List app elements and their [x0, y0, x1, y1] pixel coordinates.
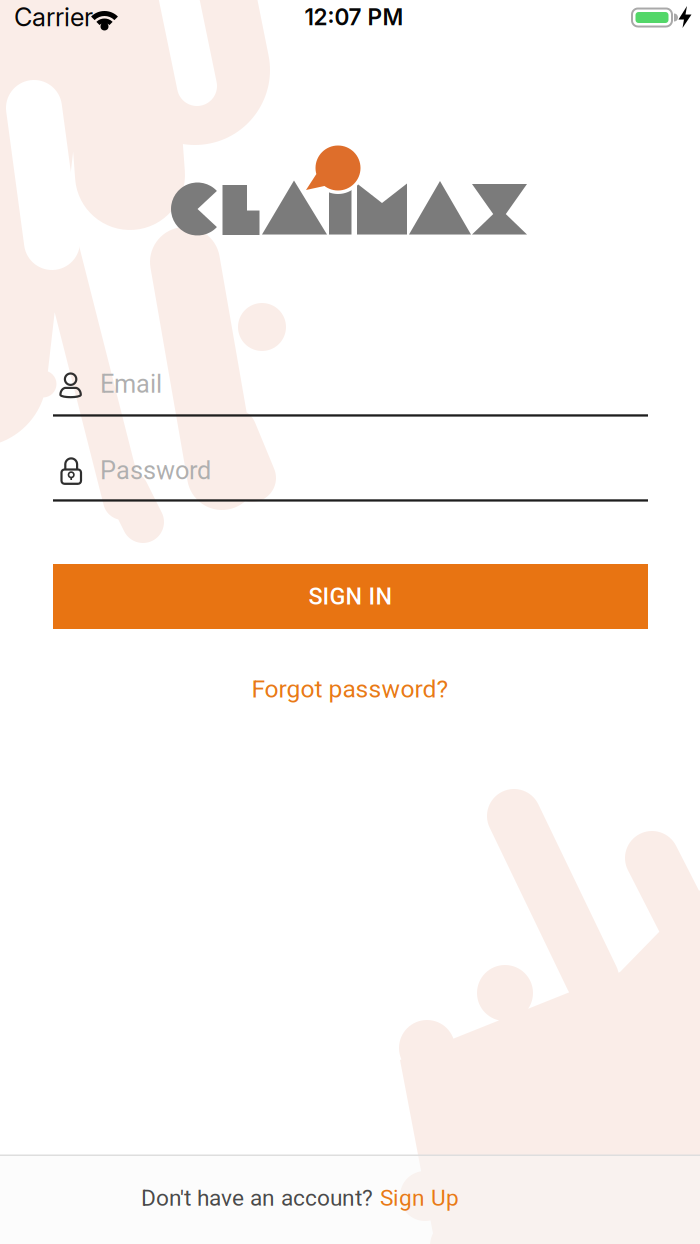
staticText: Sign Up — [380, 1185, 459, 1211]
button[interactable]: Forgot password? — [251, 674, 448, 703]
staticText: Email — [100, 369, 162, 399]
staticText: 12:07 PM — [304, 3, 403, 31]
staticText: Forgot password? — [251, 674, 448, 703]
button[interactable]: Password — [53, 446, 648, 502]
staticText: Don't have an account? — [141, 1185, 373, 1211]
button[interactable]: SIGN IN — [53, 564, 648, 629]
staticText: SIGN IN — [308, 583, 392, 610]
staticText: Carrier — [14, 2, 93, 32]
button[interactable]: Email — [53, 361, 648, 417]
button[interactable]: Sign Up — [380, 1185, 459, 1211]
staticText: Password — [100, 456, 211, 485]
